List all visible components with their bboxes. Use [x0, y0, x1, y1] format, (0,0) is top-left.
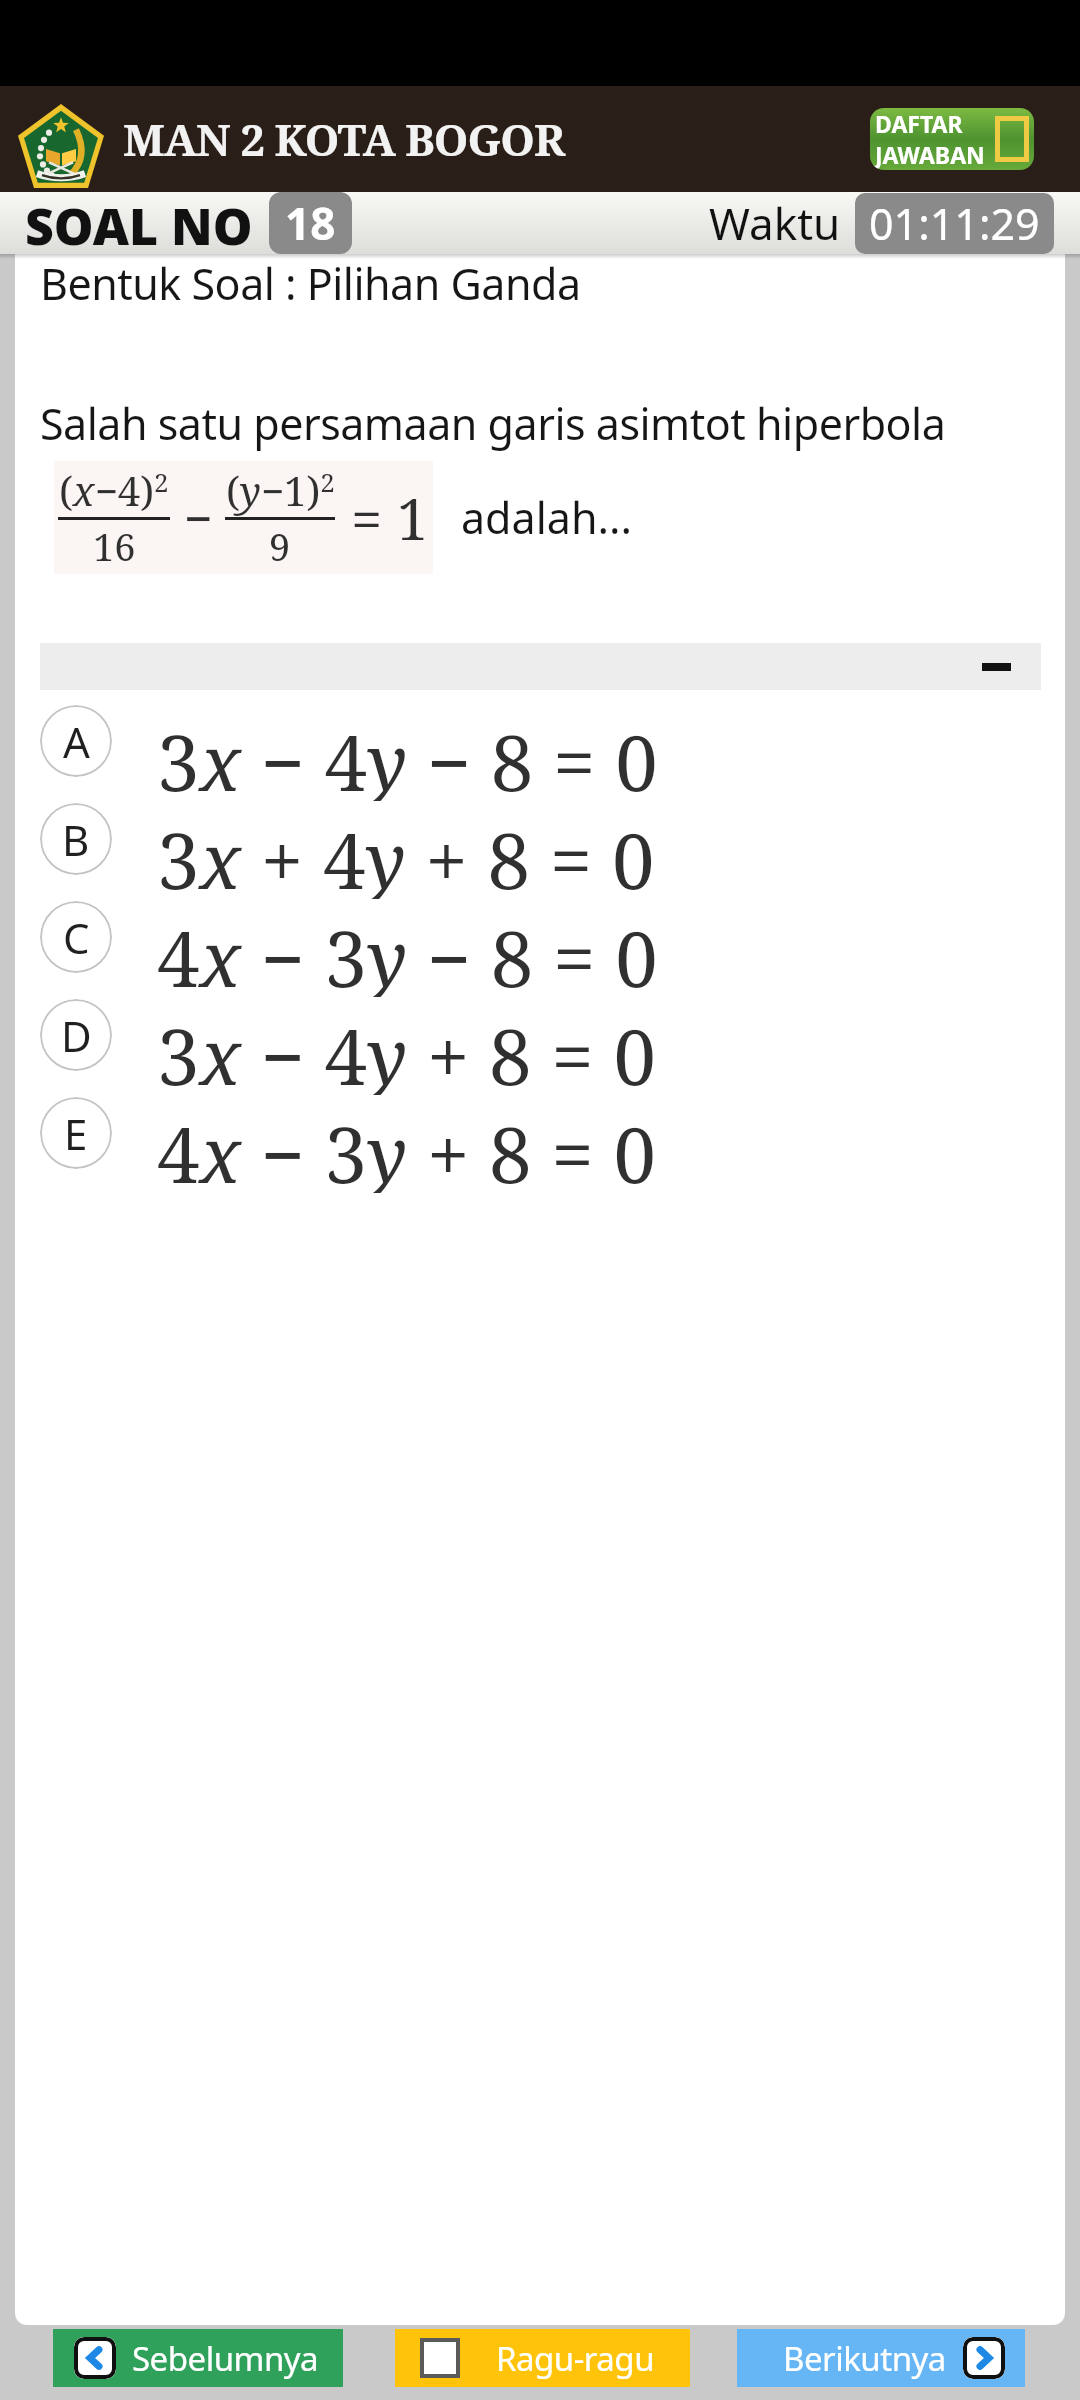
button[interactable]: Ragu-ragu: [395, 2329, 690, 2387]
staticText: DAFTAR: [875, 108, 963, 139]
staticText: B: [62, 811, 90, 868]
staticText: (x−4)2: [59, 463, 169, 517]
staticText: D: [61, 1007, 92, 1064]
staticText: (y−1)2: [226, 463, 335, 517]
button[interactable]: B: [40, 801, 1041, 899]
staticText: JAWABAN: [875, 139, 985, 170]
button[interactable]: DAFTAR: [870, 108, 1034, 170]
staticText: 9: [269, 520, 291, 572]
staticText: Berikutnya: [783, 2336, 946, 2381]
staticText: MAN 2 KOTA BOGOR: [123, 109, 565, 169]
staticText: SOAL NO: [25, 192, 253, 254]
button[interactable]: D: [40, 997, 1041, 1095]
staticText: C: [63, 909, 90, 966]
button[interactable]: Sebelumnya: [53, 2329, 343, 2387]
staticText: Salah satu persamaan garis asimtot hiper…: [40, 394, 946, 453]
staticText: 4x − 3y + 8 = 0: [157, 1102, 657, 1193]
staticText: 3x − 4y + 8 = 0: [157, 1004, 657, 1095]
button[interactable]: Berikutnya: [737, 2329, 1025, 2387]
staticText: Ragu-ragu: [496, 2336, 655, 2381]
staticText: 18: [285, 193, 336, 253]
staticText: Sebelumnya: [132, 2336, 319, 2381]
button[interactable]: [40, 643, 1041, 690]
staticText: E: [64, 1105, 88, 1162]
staticText: A: [63, 713, 90, 770]
button[interactable]: A: [40, 703, 1041, 801]
button[interactable]: E: [40, 1095, 1041, 1193]
button[interactable]: C: [40, 899, 1041, 997]
staticText: 3x + 4y + 8 = 0: [157, 808, 655, 899]
staticText: 01:11:29: [869, 194, 1040, 253]
staticText: −: [184, 484, 213, 552]
staticText: = 1: [351, 480, 429, 556]
staticText: 4x − 3y − 8 = 0: [157, 906, 658, 997]
staticText: 16: [93, 520, 136, 572]
staticText: 3x − 4y − 8 = 0: [157, 710, 658, 801]
staticText: adalah...: [461, 488, 633, 547]
staticText: Bentuk Soal : Pilihan Ganda: [40, 254, 581, 313]
staticText: Waktu: [709, 193, 841, 253]
